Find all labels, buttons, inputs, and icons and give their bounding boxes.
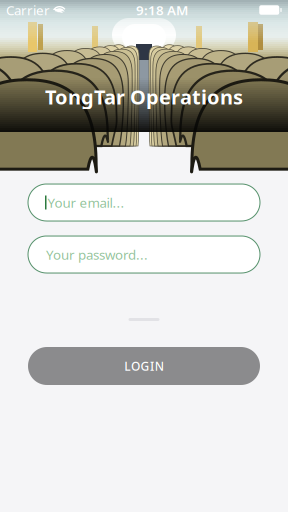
staticText: Your password... xyxy=(46,246,148,263)
button[interactable]: Your email... xyxy=(28,184,260,221)
staticText: LOGIN xyxy=(124,358,164,374)
staticText: TongTar Operations xyxy=(45,83,243,110)
staticText: Your email... xyxy=(47,194,124,211)
button[interactable]: Your password... xyxy=(28,236,260,273)
button[interactable]: LOGIN xyxy=(28,347,260,385)
staticText: 9:18 AM xyxy=(136,1,188,19)
staticText: Carrier xyxy=(6,1,50,19)
